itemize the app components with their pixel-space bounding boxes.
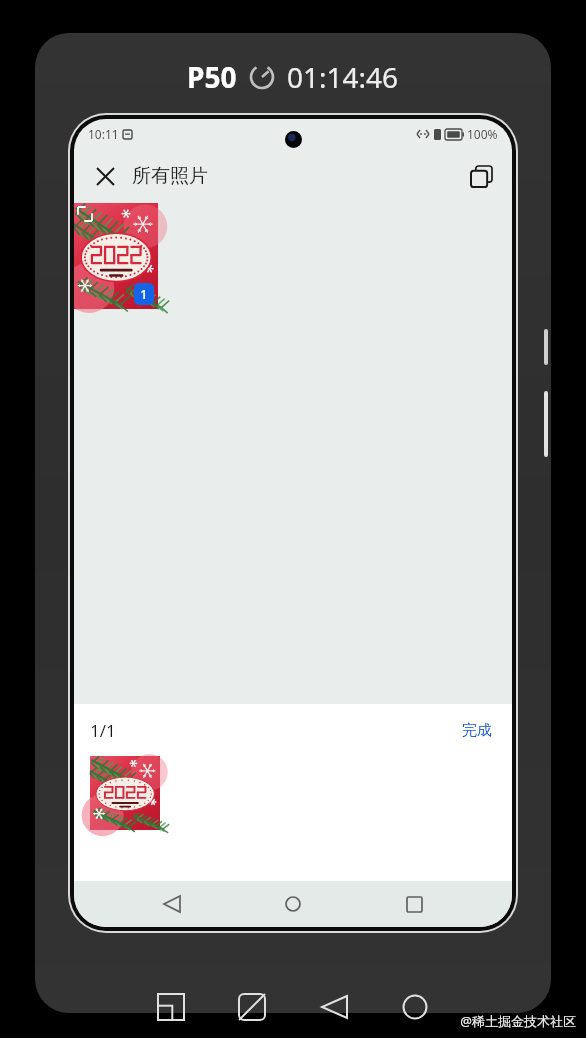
button[interactable]: Back [149,881,195,927]
button[interactable]: Close [88,159,122,193]
staticText: 01:14:46 [287,58,399,96]
button[interactable]: Home [270,881,316,927]
button[interactable]: Albums [464,159,498,193]
staticText: 10:11 [88,126,119,142]
button[interactable]: 1 [74,203,158,309]
staticText: @稀土掘金技术社区 [460,1012,576,1030]
staticText: 所有照片 [132,164,208,188]
staticText: 完成 [462,721,492,740]
staticText: 100% [467,126,498,142]
button[interactable]: Recents [391,881,437,927]
staticText: 1 [140,285,148,303]
staticText: 1/1 [90,719,116,742]
staticText: P50 [187,58,237,96]
button[interactable] [90,756,160,830]
button[interactable]: 完成 [458,717,496,744]
